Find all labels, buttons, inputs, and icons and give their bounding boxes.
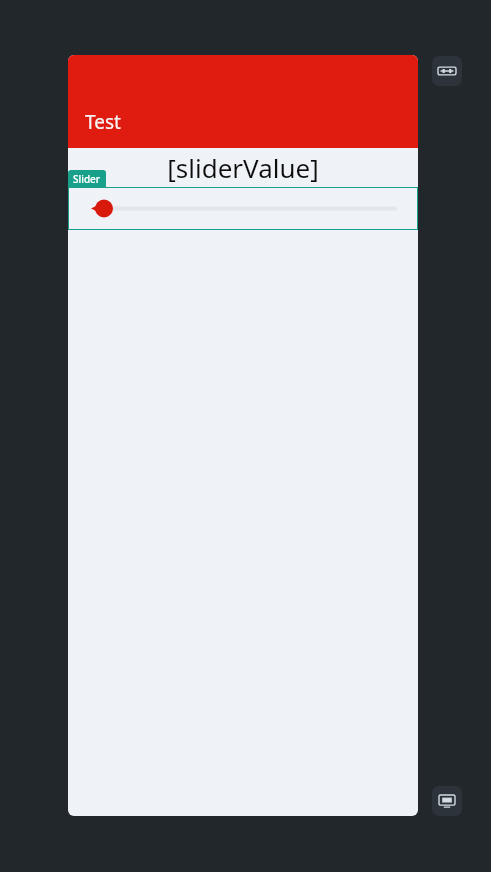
staticText: Slider bbox=[73, 172, 101, 186]
staticText: Test bbox=[85, 109, 121, 135]
staticText: [sliderValue] bbox=[167, 150, 319, 185]
button[interactable] bbox=[68, 187, 418, 230]
button[interactable]: Select device bbox=[432, 786, 462, 816]
button[interactable]: Slider bbox=[73, 170, 101, 187]
button[interactable]: Toggle device frame bbox=[432, 56, 462, 86]
button[interactable]: Test bbox=[68, 55, 418, 148]
